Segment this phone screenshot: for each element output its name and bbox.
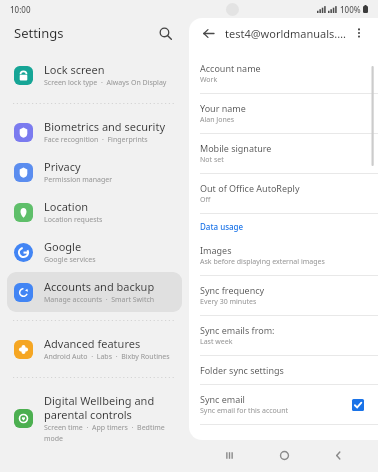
staticText: Sync frequency (200, 284, 265, 296)
staticText: Every 30 minutes (200, 297, 257, 307)
button[interactable]: Folder sync settings (189, 356, 378, 385)
button[interactable]: Back (197, 22, 219, 44)
button[interactable]: Biometrics and security (7, 112, 182, 152)
button[interactable]: Out of Office AutoReply (189, 174, 378, 214)
button[interactable]: Sync email (189, 385, 378, 425)
staticText: Images (200, 244, 232, 256)
staticText: Data usage (200, 221, 244, 232)
staticText: Digital Wellbeing and parental controls (44, 393, 174, 422)
button[interactable]: Location (7, 192, 182, 232)
button[interactable]: Mobile signature (189, 134, 378, 174)
button[interactable]: Recents (214, 440, 244, 470)
staticText: Screen lock type · Always On Display (44, 78, 167, 88)
button[interactable]: Sync emails from: (189, 316, 378, 356)
staticText: Folder sync settings (200, 364, 284, 376)
button[interactable]: Digital Wellbeing and parental controls (7, 386, 182, 450)
staticText: Sync email (200, 393, 245, 405)
button[interactable]: Your name (189, 94, 378, 134)
button[interactable]: Sync frequency (189, 276, 378, 316)
staticText: Ask before displaying external images (200, 257, 325, 267)
staticText: 10:00 (10, 4, 31, 15)
staticText: Face recognition · Fingerprints (44, 135, 148, 145)
staticText: Lock screen (44, 62, 105, 77)
staticText: Sync email for this account (200, 406, 289, 416)
staticText: 100% (340, 4, 361, 15)
staticText: Account name (200, 62, 261, 74)
staticText: Your name (200, 102, 246, 114)
staticText: Biometrics and security (44, 119, 165, 134)
staticText: Location (44, 199, 89, 214)
staticText: Mobile signature (200, 142, 272, 154)
button[interactable]: Google (7, 232, 182, 272)
button[interactable]: Search (155, 23, 175, 43)
button[interactable]: Accounts and backup (7, 272, 182, 312)
staticText: Privacy (44, 159, 81, 174)
staticText: Location requests (44, 215, 103, 225)
staticText: Alan Jones (200, 115, 235, 125)
staticText: Advanced features (44, 336, 141, 351)
staticText: Not set (200, 155, 224, 165)
staticText: Google services (44, 255, 96, 265)
staticText: Accounts and backup (44, 279, 155, 294)
button[interactable]: Account name (189, 54, 378, 94)
button[interactable]: Lock screen (7, 55, 182, 95)
button[interactable]: Back (323, 440, 353, 470)
staticText: Manage accounts · Smart Switch (44, 295, 155, 305)
staticText: Screen time · App timers · Bedtime mode (44, 423, 174, 443)
button[interactable]: Privacy (7, 152, 182, 192)
staticText: Android Auto · Labs · Bixby Routines (44, 352, 170, 362)
staticText: Out of Office AutoReply (200, 182, 300, 194)
staticText: Sync emails from: (200, 324, 275, 336)
button[interactable]: Home (269, 440, 299, 470)
button[interactable]: Images (189, 236, 378, 276)
staticText: Work (200, 75, 218, 85)
staticText: Settings (14, 24, 64, 42)
staticText: Permission manager (44, 175, 113, 185)
staticText: Google (44, 239, 82, 254)
staticText: Off (200, 195, 211, 205)
staticText: test4@worldmanuals.c... (225, 26, 348, 41)
button[interactable]: More options (348, 22, 370, 44)
button[interactable]: Advanced features (7, 329, 182, 369)
staticText: Last week (200, 337, 233, 347)
